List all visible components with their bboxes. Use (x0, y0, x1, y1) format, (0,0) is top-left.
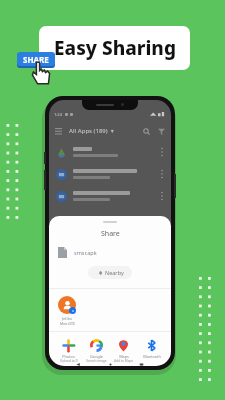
staticText: Mee-GTX (60, 321, 75, 326)
staticText: Google (90, 354, 103, 359)
other: Recents (139, 363, 144, 366)
staticText: Easy Sharing (54, 35, 176, 61)
button[interactable]: SHARE (17, 52, 55, 66)
button[interactable] (56, 163, 164, 185)
staticText: 1:24 (54, 112, 62, 117)
staticText: Nearby (105, 269, 124, 276)
button[interactable]: Nearby (88, 266, 132, 279)
button[interactable]: Bluetooth (138, 339, 165, 359)
staticText: Search image (86, 359, 107, 363)
other: Home (108, 363, 113, 366)
staticText: Share (101, 229, 120, 239)
button[interactable]: Google (83, 339, 110, 363)
staticText: Photos (62, 354, 75, 359)
button[interactable] (56, 141, 164, 163)
staticText: smsr.apk (74, 249, 97, 256)
other: Back (76, 363, 81, 366)
staticText: Bluetooth (143, 354, 161, 359)
staticText: Jeliko (62, 316, 72, 321)
staticText: Maps (119, 354, 129, 359)
staticText: Add to Maps (114, 359, 133, 363)
staticText: SHARE (23, 54, 49, 65)
button[interactable]: Photos (55, 339, 82, 363)
button[interactable]: Maps (110, 339, 137, 363)
other: Tap cursor (32, 61, 52, 85)
staticText: Upload to D (60, 359, 78, 363)
button[interactable] (56, 185, 164, 207)
button[interactable]: Jeliko (58, 296, 76, 326)
staticText: All Apps (189) ▾ (69, 127, 114, 135)
